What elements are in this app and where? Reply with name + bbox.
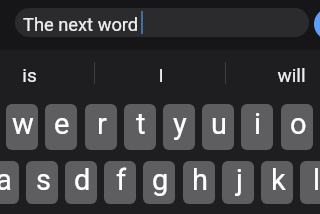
staticText: e: [54, 107, 70, 141]
staticText: l: [313, 163, 320, 197]
button[interactable]: The next word: [15, 8, 309, 37]
button[interactable]: u: [202, 104, 234, 150]
button[interactable]: f: [104, 161, 136, 204]
staticText: i: [254, 107, 262, 141]
button[interactable]: h: [183, 161, 215, 204]
staticText: f: [116, 163, 127, 197]
button[interactable]: will: [225, 50, 320, 95]
button[interactable]: g: [143, 161, 175, 204]
staticText: h: [192, 163, 208, 197]
button[interactable]: s: [26, 161, 58, 204]
staticText: g: [152, 163, 169, 197]
staticText: a: [0, 163, 12, 197]
button[interactable]: k: [261, 161, 293, 204]
staticText: r: [97, 107, 107, 141]
button[interactable]: i: [241, 104, 273, 150]
button[interactable]: w: [6, 104, 38, 150]
button[interactable]: l: [300, 161, 320, 204]
staticText: t: [136, 107, 146, 141]
button[interactable]: d: [65, 161, 97, 204]
button[interactable]: e: [45, 104, 77, 150]
button[interactable]: j: [222, 161, 254, 204]
staticText: u: [211, 107, 227, 141]
staticText: I: [158, 64, 164, 86]
button[interactable]: y: [163, 104, 195, 150]
staticText: is: [22, 64, 37, 86]
button[interactable]: r: [85, 104, 117, 150]
button[interactable]: t: [124, 104, 156, 150]
staticText: The next word: [23, 14, 139, 35]
staticText: k: [271, 163, 286, 197]
button[interactable]: a: [0, 161, 19, 204]
button[interactable]: Send: [314, 8, 320, 40]
staticText: j: [236, 163, 243, 197]
staticText: d: [74, 163, 91, 197]
button[interactable]: o: [281, 104, 313, 150]
staticText: y: [173, 107, 187, 141]
staticText: w: [12, 107, 34, 141]
staticText: o: [290, 107, 307, 141]
button[interactable]: is: [0, 50, 94, 95]
button[interactable]: I: [94, 50, 225, 95]
staticText: will: [277, 64, 306, 86]
staticText: s: [36, 163, 51, 197]
